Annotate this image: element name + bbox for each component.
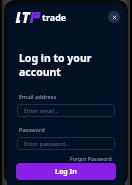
- button[interactable]: Close: [108, 11, 120, 23]
- staticText: Enter email...: [24, 107, 59, 115]
- other: LTP Trade logo: [13, 12, 39, 23]
- staticText: trade: [42, 11, 67, 23]
- staticText: Log In: [55, 167, 77, 177]
- staticText: Enter password...: [24, 140, 70, 148]
- button[interactable]: Forgot Password: [69, 154, 113, 163]
- button[interactable]: Enter password...: [17, 137, 115, 150]
- button[interactable]: Log In: [16, 163, 116, 180]
- staticText: Log in to your account: [19, 51, 125, 79]
- staticText: Email address: [19, 93, 57, 101]
- staticText: Forgot Password: [70, 155, 112, 162]
- button[interactable]: Enter email...: [17, 104, 115, 117]
- staticText: Password: [19, 126, 45, 134]
